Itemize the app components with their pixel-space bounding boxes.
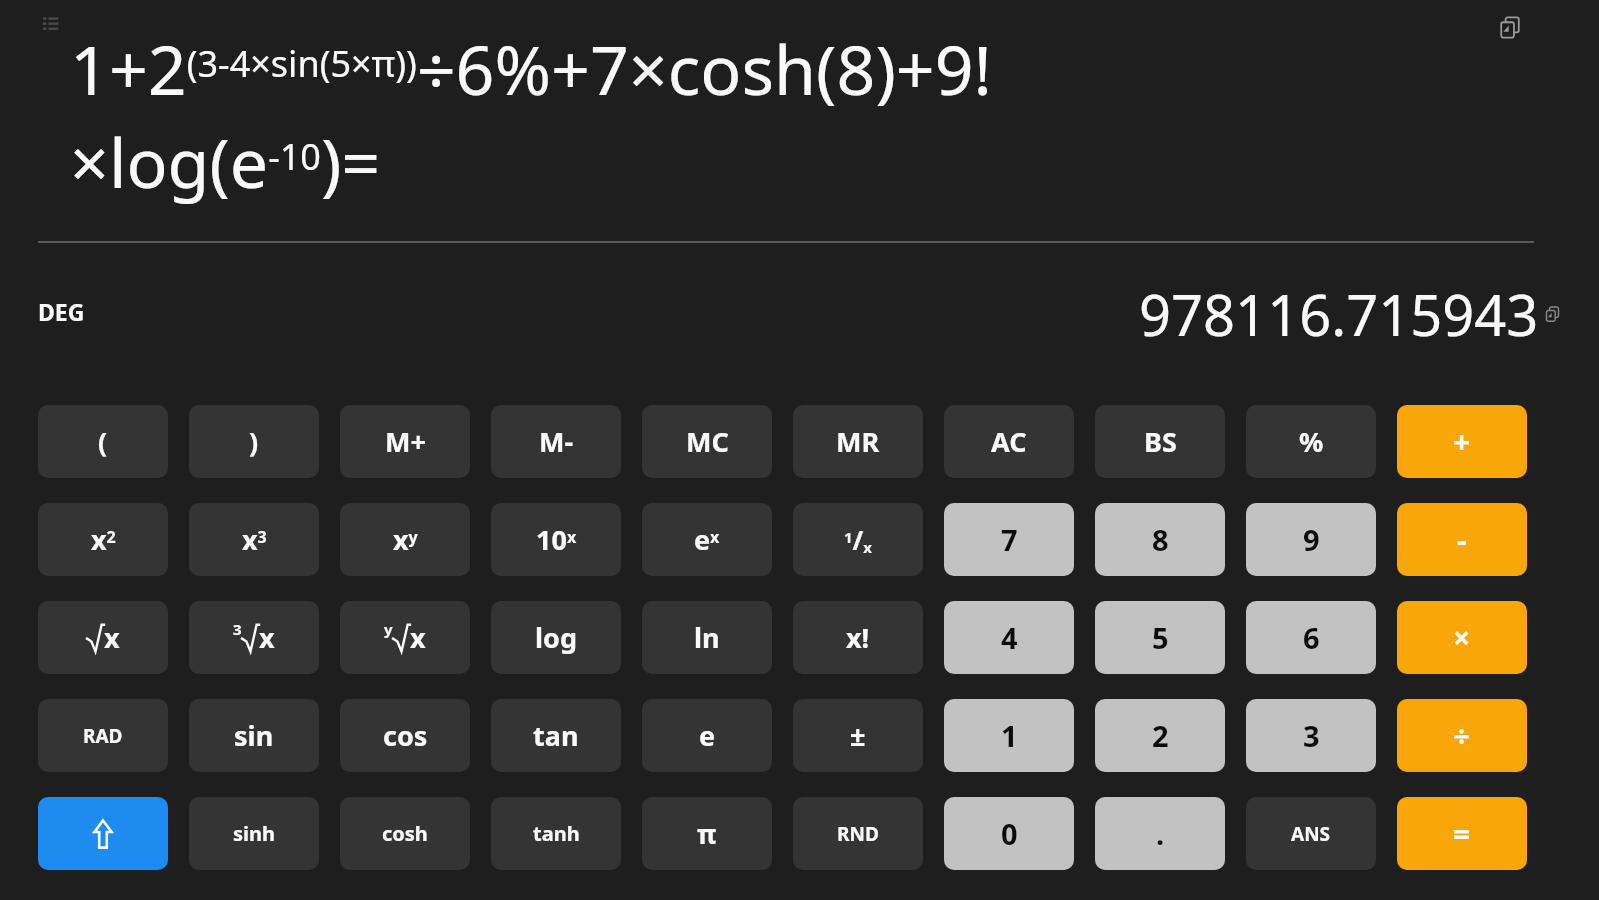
staticText: MC xyxy=(686,423,729,460)
button[interactable]: sin xyxy=(189,699,319,772)
button[interactable]: y-th root xyxy=(340,601,470,674)
button[interactable]: ln xyxy=(642,601,772,674)
staticText: 9 xyxy=(1303,520,1320,559)
staticText: AC xyxy=(991,423,1027,460)
button[interactable]: ) xyxy=(189,405,319,478)
staticText: ) xyxy=(249,423,259,460)
staticText: sinh xyxy=(233,820,276,847)
staticText: ( xyxy=(98,423,108,460)
staticText: 0 xyxy=(1001,814,1018,853)
button[interactable]: cos xyxy=(340,699,470,772)
button[interactable]: DEG xyxy=(38,296,85,327)
button[interactable]: ANS xyxy=(1246,797,1376,870)
button[interactable]: Cube root xyxy=(189,601,319,674)
button[interactable]: 5 xyxy=(1095,601,1225,674)
button[interactable]: MR xyxy=(793,405,923,478)
button[interactable]: MC xyxy=(642,405,772,478)
button[interactable]: 6 xyxy=(1246,601,1376,674)
button[interactable]: xy xyxy=(340,503,470,576)
staticText: 5 xyxy=(1152,618,1169,657)
button[interactable]: 1/x xyxy=(793,503,923,576)
staticText: DEG xyxy=(38,296,85,327)
button[interactable]: 10x xyxy=(491,503,621,576)
staticText: M- xyxy=(539,423,574,460)
button[interactable]: x! xyxy=(793,601,923,674)
staticText: 1 xyxy=(1001,716,1018,755)
staticText: 6 xyxy=(1303,618,1320,657)
staticText: x! xyxy=(846,619,870,656)
button[interactable]: . xyxy=(1095,797,1225,870)
staticText: e xyxy=(699,717,716,754)
staticText: ± xyxy=(850,717,866,754)
button[interactable]: tanh xyxy=(491,797,621,870)
button[interactable]: M+ xyxy=(340,405,470,478)
button[interactable]: - xyxy=(1397,503,1527,576)
button[interactable]: tan xyxy=(491,699,621,772)
staticText: 3 xyxy=(233,619,242,639)
staticText: cos xyxy=(383,717,428,754)
button[interactable]: 2 xyxy=(1095,699,1225,772)
staticText: x xyxy=(104,619,120,656)
button[interactable]: x2 xyxy=(38,503,168,576)
button[interactable]: + xyxy=(1397,405,1527,478)
button[interactable]: 3 xyxy=(1246,699,1376,772)
button[interactable]: ( xyxy=(38,405,168,478)
button[interactable]: ÷ xyxy=(1397,699,1527,772)
staticText: RND xyxy=(837,821,879,847)
staticText: xy xyxy=(393,521,418,558)
button[interactable]: Copy expression xyxy=(1494,12,1526,44)
button[interactable]: M- xyxy=(491,405,621,478)
staticText: . xyxy=(1156,814,1165,853)
button[interactable]: BS xyxy=(1095,405,1225,478)
staticText: ANS xyxy=(1291,821,1331,847)
staticText: cosh xyxy=(382,820,428,847)
button[interactable]: Copy result xyxy=(1541,303,1563,325)
button[interactable]: = xyxy=(1397,797,1527,870)
button[interactable]: 7 xyxy=(944,503,1074,576)
button[interactable]: e xyxy=(642,699,772,772)
button[interactable]: ± xyxy=(793,699,923,772)
staticText: 978116.715943 xyxy=(1139,276,1539,352)
staticText: - xyxy=(1457,519,1467,560)
staticText: x xyxy=(259,619,275,656)
staticText: x2 xyxy=(91,521,116,558)
button[interactable]: RND xyxy=(793,797,923,870)
button[interactable]: AC xyxy=(944,405,1074,478)
button[interactable]: RAD xyxy=(38,699,168,772)
staticText: 7 xyxy=(1001,520,1018,559)
button[interactable]: x3 xyxy=(189,503,319,576)
staticText: MR xyxy=(836,423,880,460)
staticText: + xyxy=(1453,421,1471,462)
staticText: M+ xyxy=(385,423,426,460)
staticText: 10x xyxy=(536,521,577,558)
button[interactable]: % xyxy=(1246,405,1376,478)
button[interactable]: 0 xyxy=(944,797,1074,870)
staticText: = xyxy=(1453,813,1471,854)
staticText: 8 xyxy=(1152,520,1169,559)
button[interactable]: 1 xyxy=(944,699,1074,772)
button[interactable]: π xyxy=(642,797,772,870)
button[interactable]: Menu xyxy=(40,12,62,34)
button[interactable]: sinh xyxy=(189,797,319,870)
button[interactable]: 8 xyxy=(1095,503,1225,576)
staticText: tanh xyxy=(533,820,580,847)
button[interactable]: 9 xyxy=(1246,503,1376,576)
staticText: BS xyxy=(1144,423,1177,460)
button[interactable]: log xyxy=(491,601,621,674)
button[interactable]: ex xyxy=(642,503,772,576)
staticText: sin xyxy=(234,717,274,754)
button[interactable]: 4 xyxy=(944,601,1074,674)
button[interactable]: cosh xyxy=(340,797,470,870)
button[interactable]: Shift xyxy=(38,797,168,870)
staticText: % xyxy=(1299,423,1324,460)
button[interactable]: × xyxy=(1397,601,1527,674)
staticText: 2 xyxy=(1152,716,1169,755)
staticText: 4 xyxy=(1001,618,1018,657)
staticText: ÷ xyxy=(1453,715,1471,756)
staticText: 3 xyxy=(1303,716,1320,755)
button[interactable]: Square root xyxy=(38,601,168,674)
staticText: × xyxy=(1453,617,1471,658)
staticText: x3 xyxy=(242,521,267,558)
staticText: RAD xyxy=(83,723,123,749)
staticText: ln xyxy=(694,619,720,656)
